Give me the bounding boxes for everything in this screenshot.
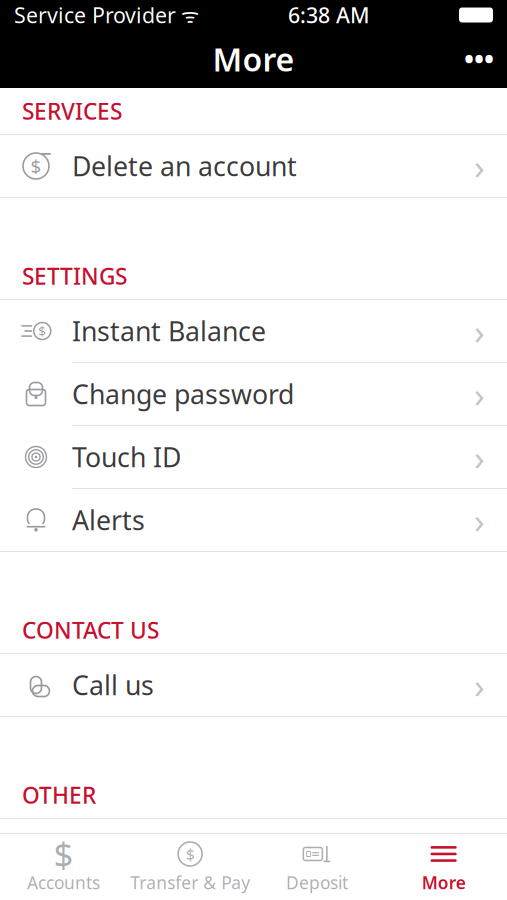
staticText: › <box>474 371 485 417</box>
staticText: Delete an account <box>72 148 297 184</box>
staticText: Call us <box>72 667 154 703</box>
staticText: CONTACT US <box>22 615 159 645</box>
staticText: › <box>474 662 485 708</box>
staticText: Deposit <box>286 871 348 894</box>
staticText: Accounts <box>27 871 100 894</box>
button[interactable]: Call us <box>0 654 507 717</box>
staticText: More <box>212 38 294 80</box>
staticText: ᯤ <box>176 2 199 28</box>
staticText: More <box>422 871 466 894</box>
staticText: Touch ID <box>72 439 181 475</box>
staticText: › <box>474 434 485 480</box>
staticText: OTHER <box>22 780 96 810</box>
staticText: SERVICES <box>22 96 122 126</box>
staticText: Service Provider <box>14 1 176 29</box>
staticText: $ <box>38 322 46 340</box>
staticText: SETTINGS <box>22 261 127 291</box>
button[interactable]: Touch ID <box>0 426 507 489</box>
staticText: Instant Balance <box>72 313 266 349</box>
button[interactable]: $ <box>127 834 254 900</box>
staticText: ••• <box>464 41 494 77</box>
staticText: Change password <box>72 376 294 412</box>
staticText: $ <box>186 843 195 865</box>
staticText: 6:38 AM <box>288 1 370 29</box>
button[interactable]: More options <box>451 33 507 85</box>
button[interactable]: Change password <box>0 363 507 426</box>
staticText: › <box>474 497 485 543</box>
staticText: Transfer & Pay <box>130 871 250 894</box>
button[interactable]: Alerts <box>0 489 507 552</box>
button[interactable]: Deposit <box>253 834 380 900</box>
staticText: $ <box>53 831 73 877</box>
button[interactable]: More <box>380 834 507 900</box>
button[interactable]: $ <box>0 300 507 363</box>
staticText: $ <box>30 154 41 178</box>
staticText: › <box>474 143 485 189</box>
button[interactable]: $ <box>0 135 507 198</box>
button[interactable]: $ <box>0 834 127 900</box>
staticText: Alerts <box>72 502 145 538</box>
staticText: › <box>474 308 485 354</box>
